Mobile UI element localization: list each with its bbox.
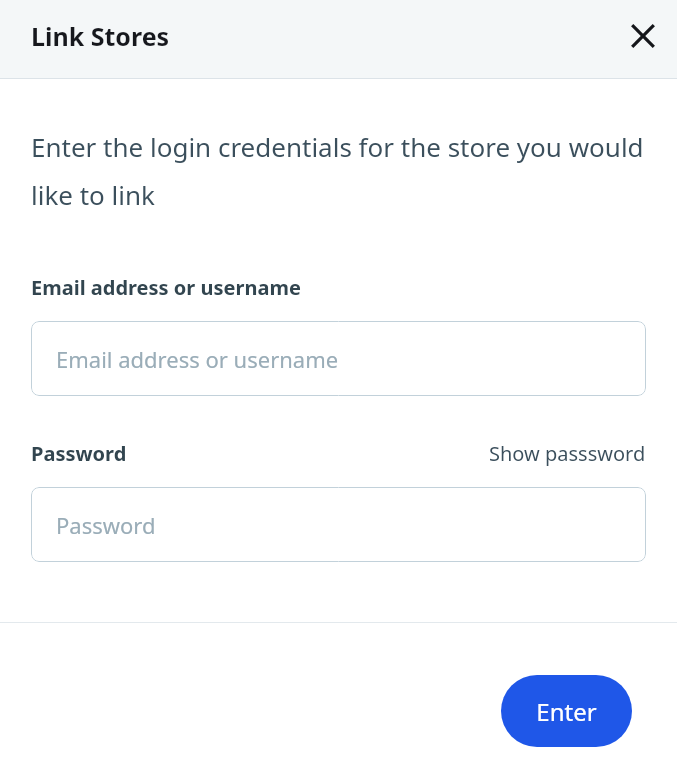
staticText: Password — [31, 440, 127, 467]
staticText: Password — [56, 510, 156, 540]
staticText: Email address or username — [56, 344, 339, 374]
button[interactable]: Email address or username — [31, 321, 646, 396]
button[interactable]: Close — [615, 8, 671, 64]
staticText: Link Stores — [31, 19, 170, 53]
button[interactable]: Enter — [501, 675, 632, 747]
staticText: Show passsword — [489, 440, 646, 467]
staticText: Email address or username — [31, 274, 301, 301]
staticText: Enter the login credentials for the stor… — [31, 129, 646, 212]
staticText: Enter — [536, 695, 597, 728]
button[interactable]: Password — [31, 487, 646, 562]
button[interactable]: Show passsword — [489, 440, 646, 467]
